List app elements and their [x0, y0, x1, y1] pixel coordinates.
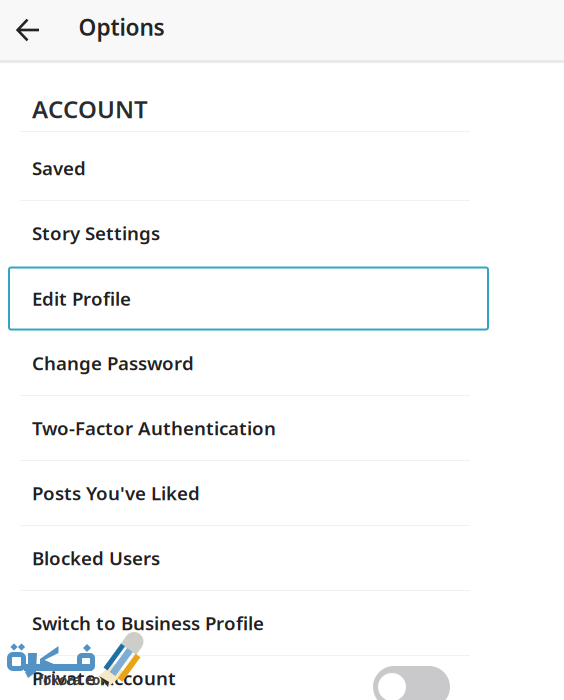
button[interactable]: Posts You've Liked [0, 461, 564, 526]
button[interactable]: Saved [0, 136, 564, 201]
staticText: Posts You've Liked [32, 481, 200, 505]
staticText: Story Settings [32, 221, 160, 245]
button[interactable]: Blocked Users [0, 526, 564, 591]
staticText: Edit Profile [32, 286, 131, 311]
button[interactable]: Options [0, 0, 564, 60]
staticText: Change Password [32, 351, 194, 375]
button[interactable]: Switch to Business Profile [0, 591, 564, 656]
staticText: Blocked Users [32, 546, 160, 570]
button[interactable]: Private Account [0, 656, 564, 700]
staticText: Switch to Business Profile [32, 611, 264, 635]
button[interactable]: Edit Profile [0, 266, 564, 331]
button[interactable]: Story Settings [0, 201, 564, 266]
button[interactable]: Private Account [373, 666, 450, 700]
staticText: ACCOUNT [32, 93, 148, 125]
staticText: Two-Factor Authentication [32, 416, 276, 440]
staticText: Private Account [32, 666, 176, 690]
button[interactable]: Change Password [0, 331, 564, 396]
staticText: Saved [32, 156, 86, 180]
staticText: fokora.com [38, 671, 113, 689]
staticText: Options [79, 12, 165, 42]
button[interactable]: Two-Factor Authentication [0, 396, 564, 461]
